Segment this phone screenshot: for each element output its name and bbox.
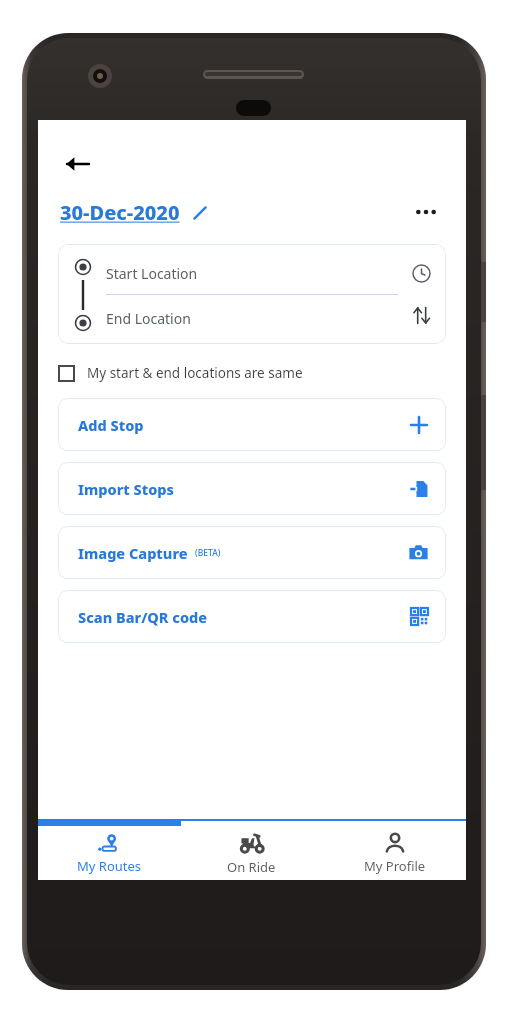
button[interactable]: Image Capture (58, 526, 446, 579)
button[interactable]: Import Stops (58, 462, 446, 515)
button[interactable]: Swap locations (402, 296, 440, 334)
button[interactable]: Add Stop (58, 398, 446, 451)
button[interactable]: Back (56, 142, 100, 186)
button[interactable]: 30-Dec-2020 (60, 199, 212, 226)
button[interactable]: My Profile (323, 832, 466, 875)
button[interactable]: Start Location (106, 252, 436, 294)
button[interactable]: Set time (402, 254, 440, 292)
button[interactable]: End Location (106, 298, 436, 338)
button[interactable]: My start & end locations are same (58, 356, 303, 390)
button[interactable]: Scan Bar/QR code (58, 590, 446, 643)
staticText: 30-Dec-2020 (60, 199, 180, 226)
staticText: On Ride (227, 858, 276, 876)
staticText: Scan Bar/QR code (78, 607, 208, 627)
staticText: Add Stop (78, 415, 144, 435)
button[interactable]: On Ride (180, 831, 323, 876)
button[interactable]: Edit date (188, 201, 212, 225)
staticText: (BETA) (195, 547, 221, 559)
staticText: My Profile (364, 857, 426, 875)
staticText: End Location (106, 309, 191, 328)
staticText: My Routes (77, 857, 142, 875)
button[interactable]: My Routes (38, 832, 180, 875)
staticText: Start Location (106, 264, 198, 283)
staticText: Import Stops (78, 479, 174, 499)
button[interactable]: More options (406, 192, 446, 232)
staticText: Image Capture (78, 543, 188, 563)
staticText: My start & end locations are same (87, 364, 303, 382)
